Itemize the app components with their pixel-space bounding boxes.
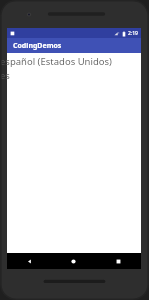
button[interactable]: Home bbox=[51, 253, 96, 269]
button[interactable]: Recent apps bbox=[96, 253, 141, 269]
staticText: 2:19 bbox=[128, 30, 138, 37]
button[interactable]: Back bbox=[7, 253, 51, 269]
staticText: CodingDemos bbox=[13, 41, 62, 51]
button[interactable]: CodingDemos bbox=[7, 38, 141, 53]
staticText: español (Estados Unidos) bbox=[1, 55, 112, 68]
staticText: es bbox=[1, 69, 10, 82]
button[interactable]: español (Estados Unidos) bbox=[7, 55, 141, 82]
